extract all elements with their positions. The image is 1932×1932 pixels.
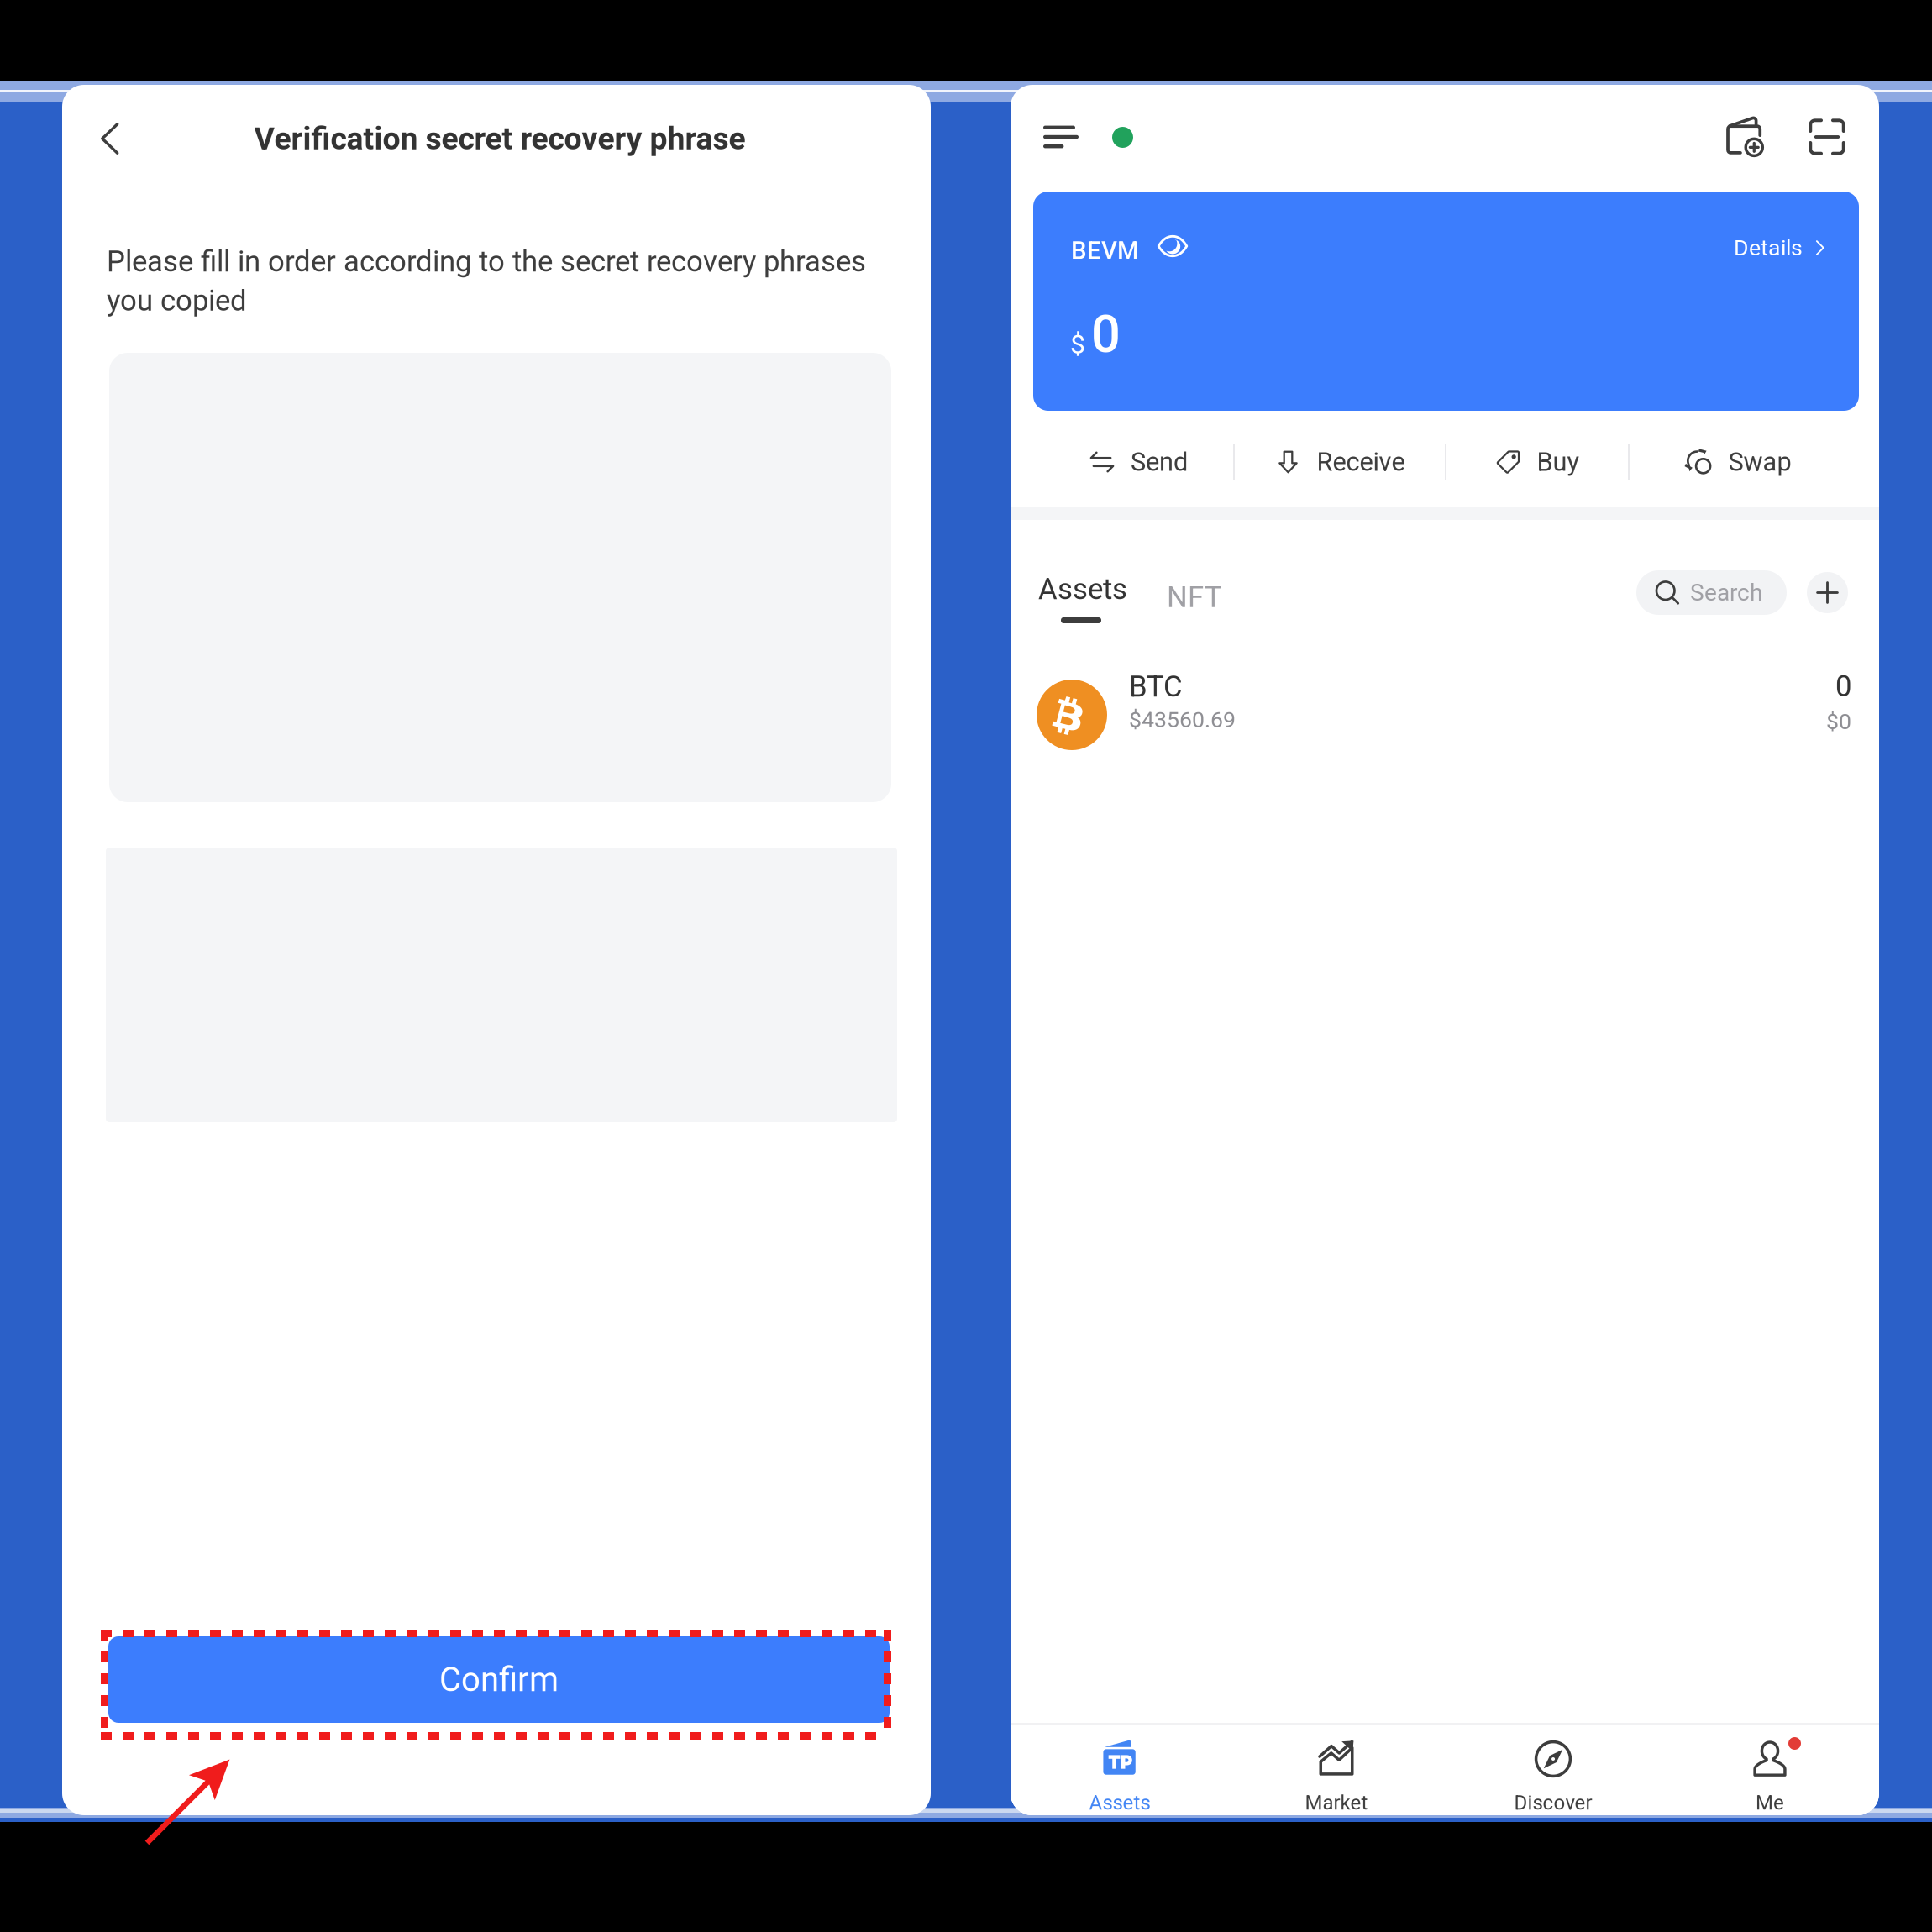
staticText: $0 [1826, 708, 1851, 735]
button[interactable]: Buy [1446, 424, 1628, 500]
staticText: Send [1131, 447, 1188, 477]
button[interactable]: Add token [1807, 572, 1848, 613]
button[interactable]: BTC [1037, 664, 1851, 765]
button[interactable]: Receive [1235, 424, 1445, 500]
button[interactable]: Send [1043, 424, 1233, 500]
button[interactable]: Search [1636, 570, 1787, 615]
staticText: 0 [1091, 304, 1121, 364]
staticText: Confirm [439, 1660, 559, 1699]
button[interactable]: Assets [1036, 572, 1140, 649]
staticText: Market [1305, 1791, 1368, 1814]
staticText: BEVM [1071, 236, 1139, 265]
staticText: Me [1756, 1791, 1784, 1814]
button[interactable]: Discover [1445, 1731, 1662, 1830]
staticText: Receive [1317, 447, 1405, 477]
button[interactable]: Market [1228, 1731, 1445, 1830]
staticText: Assets [1038, 572, 1127, 606]
button[interactable]: Menu [1022, 98, 1100, 176]
button[interactable]: Back [72, 100, 150, 177]
staticText: $ [1070, 328, 1085, 360]
button[interactable]: Confirm [108, 1636, 890, 1723]
staticText: Assets [1089, 1791, 1150, 1814]
staticText: Please fill in order according to the se… [107, 244, 866, 279]
button[interactable]: Swap [1630, 424, 1846, 500]
staticText: Buy [1537, 447, 1580, 477]
staticText: 0 [1835, 669, 1851, 703]
staticText: NFT [1167, 580, 1222, 614]
staticText: $43560.69 [1129, 706, 1236, 733]
button[interactable]: Scan [1788, 98, 1866, 176]
button[interactable]: Details [1734, 226, 1829, 270]
staticText: Discover [1514, 1791, 1592, 1814]
staticText: BTC [1129, 669, 1183, 704]
staticText: you copied [107, 284, 247, 318]
button[interactable]: Add wallet [1707, 98, 1784, 176]
staticText: Swap [1728, 447, 1791, 477]
button[interactable]: NFT [1167, 572, 1251, 622]
button[interactable]: Assets [1011, 1731, 1228, 1830]
staticText: Verification secret recovery phrase [254, 120, 745, 157]
button[interactable]: Me [1662, 1731, 1878, 1830]
staticText: Search [1690, 579, 1762, 606]
staticText: Details [1734, 235, 1803, 261]
